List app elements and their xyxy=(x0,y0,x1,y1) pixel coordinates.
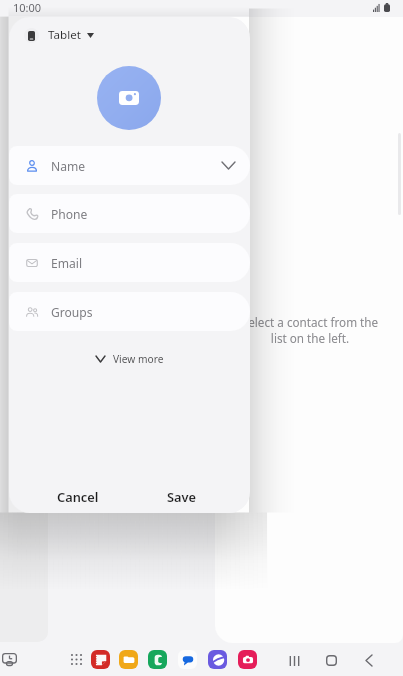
staticText: 10:00 xyxy=(13,0,42,15)
staticText: Groups xyxy=(51,304,93,320)
staticText: Cancel xyxy=(57,488,99,505)
button[interactable]: App xyxy=(91,650,110,669)
button[interactable]: Apps xyxy=(70,653,83,666)
button[interactable]: Email xyxy=(9,243,250,282)
button[interactable]: App xyxy=(178,650,197,669)
button[interactable]: Recent apps xyxy=(286,652,303,669)
button[interactable]: App xyxy=(208,650,227,669)
button[interactable]: Groups xyxy=(9,292,250,331)
staticText: Name xyxy=(51,158,86,174)
button[interactable]: Recent screens xyxy=(2,653,17,666)
staticText: Phone xyxy=(51,206,88,222)
button[interactable]: Save xyxy=(157,481,207,511)
button[interactable]: Cancel xyxy=(47,481,109,511)
button[interactable]: Phone xyxy=(9,194,250,233)
staticText: Save xyxy=(167,488,197,505)
button[interactable]: View more xyxy=(87,346,173,372)
button[interactable]: Back xyxy=(360,652,377,669)
button[interactable]: Home xyxy=(323,652,340,669)
button[interactable]: App xyxy=(148,650,167,669)
staticText: Tablet xyxy=(48,27,81,43)
button[interactable]: App xyxy=(238,650,257,669)
staticText: Select a contact from the list on the le… xyxy=(220,314,400,346)
button[interactable]: Name xyxy=(9,146,250,185)
staticText: View more xyxy=(113,352,164,366)
staticText: Email xyxy=(51,255,83,271)
button[interactable]: App xyxy=(119,650,138,669)
button[interactable]: Add photo xyxy=(97,66,161,130)
